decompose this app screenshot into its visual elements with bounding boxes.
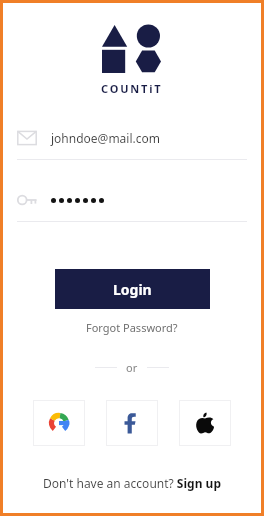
button[interactable]: Forgot Password? bbox=[80, 317, 184, 338]
staticText: COUNTiT bbox=[101, 81, 163, 96]
staticText: or bbox=[126, 360, 138, 375]
staticText: Forgot Password? bbox=[86, 320, 178, 335]
button[interactable]: Don't have an account? Sign up bbox=[3, 469, 261, 497]
button[interactable]: Sign in with Google bbox=[33, 400, 85, 446]
button[interactable]: Sign in with Facebook bbox=[106, 400, 158, 446]
button[interactable]: Password field bbox=[17, 188, 247, 222]
button[interactable]: Login bbox=[55, 269, 210, 309]
button[interactable]: Sign in with Apple bbox=[179, 400, 231, 446]
button[interactable]: Email field bbox=[17, 126, 247, 160]
staticText: Login bbox=[113, 280, 152, 299]
staticText: Don't have an account? Sign up bbox=[43, 475, 221, 491]
staticText: johndoe@mail.com bbox=[51, 130, 160, 146]
